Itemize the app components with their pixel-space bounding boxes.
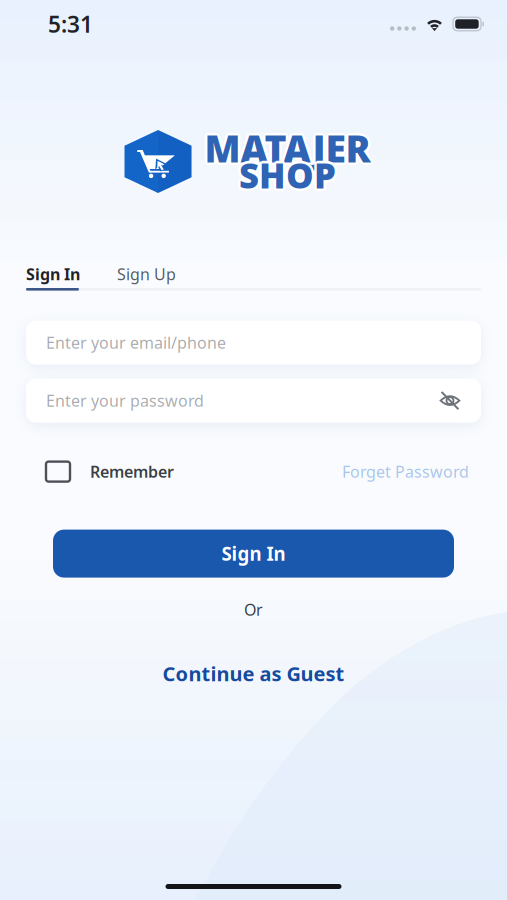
staticText: MATAJER <box>206 121 372 171</box>
button[interactable]: Remember <box>46 460 174 484</box>
staticText: MATAJER <box>204 126 370 175</box>
staticText: Remember <box>90 461 174 482</box>
staticText: SHOP <box>237 154 334 200</box>
staticText: Continue as Guest <box>162 660 344 687</box>
button[interactable]: Sign Up <box>117 263 176 285</box>
staticText: Forget Password <box>342 461 469 482</box>
staticText: SHOP <box>241 150 338 196</box>
button[interactable]: Continue as Guest <box>162 663 344 685</box>
staticText: Sign In <box>221 541 285 566</box>
staticText: SHOP <box>241 154 338 200</box>
staticText: SHOP <box>239 149 336 195</box>
staticText: SHOP <box>239 155 336 201</box>
staticText: Sign In <box>26 263 80 285</box>
button[interactable]: Sign In <box>53 530 454 578</box>
staticText: SHOP <box>237 150 334 196</box>
staticText: MATAJER <box>204 123 370 173</box>
staticText: Sign Up <box>117 263 176 285</box>
staticText: MATAJER <box>204 121 370 170</box>
staticText: Enter your password <box>46 390 204 411</box>
staticText: SHOP <box>242 152 339 198</box>
staticText: MATAJER <box>206 125 372 175</box>
staticText: MATAJER <box>203 121 369 171</box>
staticText: SHOP <box>236 152 333 198</box>
staticText: SHOP <box>239 152 336 198</box>
button[interactable]: Show password <box>435 386 465 416</box>
staticText: MATAJER <box>203 125 369 175</box>
button[interactable]: Forget Password <box>342 460 469 484</box>
staticText: 5:31 <box>48 9 93 39</box>
staticText: Enter your email/phone <box>46 332 226 353</box>
staticText: Or <box>244 599 263 620</box>
button[interactable]: Sign In <box>26 263 80 285</box>
staticText: MATAJER <box>202 123 368 173</box>
staticText: MATAJER <box>207 123 373 173</box>
